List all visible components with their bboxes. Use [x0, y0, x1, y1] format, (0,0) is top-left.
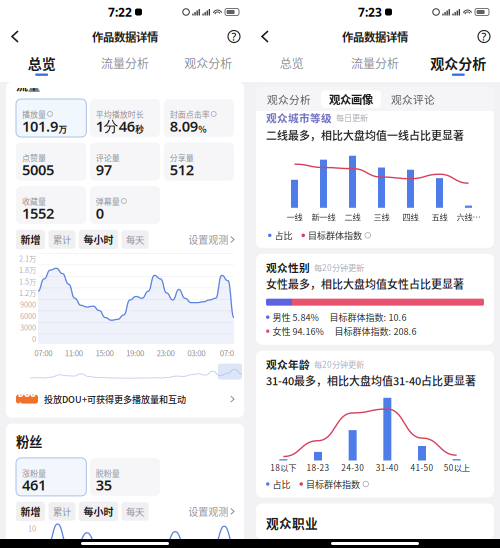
staticText: 19:00	[126, 347, 144, 359]
staticText: 作品数据详情	[92, 28, 158, 45]
staticText: 流量分析	[101, 54, 149, 72]
staticText: 每天	[126, 505, 144, 518]
staticText: 新一线	[311, 211, 335, 223]
staticText: 101.9	[22, 116, 58, 136]
staticText: 女性最多，相比大盘均值女性占比更显著	[266, 276, 464, 292]
staticText: 二线	[344, 211, 360, 223]
staticText: 每小时	[83, 232, 113, 247]
staticText: 弹幕量	[96, 195, 120, 207]
staticText: 五线	[431, 211, 447, 223]
staticText: 秒	[135, 123, 144, 135]
staticText: 03:00	[187, 347, 205, 359]
staticText: 累计	[53, 233, 71, 246]
staticText: 总览	[280, 54, 304, 72]
button[interactable]: 设置观测	[188, 232, 234, 247]
staticText: 10	[28, 523, 36, 533]
staticText: 07:0	[220, 347, 234, 359]
button[interactable]: 流量分析	[333, 56, 417, 82]
button[interactable]: DOU+	[6, 388, 244, 411]
staticText: 作品数据详情	[342, 28, 408, 45]
staticText: 三线	[373, 211, 389, 223]
staticText: 粉丝	[16, 432, 42, 451]
button[interactable]: 新增	[16, 502, 45, 521]
staticText: 50以上	[444, 461, 470, 473]
staticText: 播放量	[22, 108, 46, 120]
staticText: 1.5万	[19, 276, 36, 287]
button[interactable]: 总览	[0, 56, 83, 82]
button[interactable]: Help	[468, 24, 500, 48]
button[interactable]: 每小时	[79, 502, 118, 521]
button[interactable]: 观众分析	[167, 56, 250, 82]
staticText: 观众分析	[267, 91, 311, 107]
staticText: 0	[32, 333, 36, 344]
staticText: 点赞量	[22, 152, 46, 163]
staticText: 目标群体指数	[306, 477, 360, 490]
staticText: 35	[96, 475, 112, 495]
staticText: 收藏量	[22, 195, 46, 207]
button[interactable]: Back	[250, 24, 280, 48]
button[interactable]: 观众分析	[417, 56, 500, 82]
staticText: 1.2万	[19, 287, 36, 298]
button[interactable]: Help	[218, 24, 250, 48]
staticText: 2.1万	[19, 253, 36, 264]
staticText: 1552	[22, 203, 54, 223]
staticText: 15:00	[95, 347, 113, 359]
button[interactable]: 新增	[16, 230, 45, 249]
staticText: 脱粉量	[96, 467, 120, 479]
staticText: 女性 94.16%	[272, 325, 323, 338]
staticText: 占比	[274, 229, 292, 242]
button[interactable]: 每天	[121, 230, 148, 249]
button[interactable]: 每天	[121, 502, 148, 521]
staticText: 11:00	[65, 347, 83, 359]
staticText: 每小时	[83, 504, 113, 519]
staticText: 总览	[28, 53, 56, 73]
button[interactable]: 累计	[48, 502, 75, 521]
staticText: 1.8万	[19, 264, 36, 275]
staticText: 设置观测	[188, 504, 228, 519]
staticText: 6000	[20, 310, 36, 321]
staticText: 平均播放时长	[96, 108, 144, 120]
button[interactable]: 观众评论	[383, 90, 443, 108]
staticText: 涨粉量	[22, 467, 46, 479]
staticText: 目标群体指数	[308, 229, 362, 242]
staticText: 5005	[22, 160, 54, 179]
staticText: 目标群体指数: 10.6	[329, 311, 406, 324]
staticText: 24-30	[341, 461, 364, 473]
staticText: 每天	[126, 233, 144, 246]
staticText: 512	[170, 160, 194, 179]
staticText: 设置观测	[188, 232, 228, 247]
button[interactable]: Back	[0, 24, 30, 48]
staticText: 07:00	[34, 347, 52, 359]
staticText: 9000	[20, 299, 36, 310]
staticText: 投放DOU+可获得更多播放量和互动	[44, 392, 186, 406]
staticText: 封面点击率	[170, 108, 210, 120]
staticText: 分享量	[170, 152, 194, 163]
staticText: 观众评论	[391, 91, 435, 107]
staticText: 每日更新	[336, 111, 368, 123]
button[interactable]: 设置观测	[188, 504, 234, 519]
button[interactable]: 累计	[48, 230, 75, 249]
button[interactable]: 观众分析	[259, 90, 319, 108]
staticText: 男性 5.84%	[272, 311, 318, 324]
button[interactable]: 每小时	[79, 230, 118, 249]
staticText: 1分46	[96, 116, 135, 136]
staticText: 18以下	[270, 461, 296, 473]
staticText: 31-40	[376, 461, 399, 473]
staticText: ?	[231, 29, 236, 44]
staticText: 新增	[20, 232, 40, 247]
staticText: 每20分钟更新	[314, 261, 364, 273]
staticText: 观众职业	[266, 513, 318, 532]
staticText: %	[198, 123, 206, 135]
staticText: 461	[22, 475, 46, 495]
staticText: 观众年龄	[266, 356, 310, 372]
staticText: 目标群体指数: 208.6	[334, 325, 416, 338]
staticText: 累计	[53, 505, 71, 518]
staticText: 评论量	[96, 152, 120, 163]
staticText: 观众分析	[184, 54, 232, 72]
staticText: 六线…	[456, 211, 480, 223]
button[interactable]: 流量分析	[83, 56, 167, 82]
button[interactable]: 观众画像	[321, 90, 381, 108]
staticText: 31-40最多，相比大盘均值31-40占比更显著	[266, 373, 476, 388]
staticText: 一线	[286, 211, 302, 223]
button[interactable]: 总览	[250, 56, 333, 82]
